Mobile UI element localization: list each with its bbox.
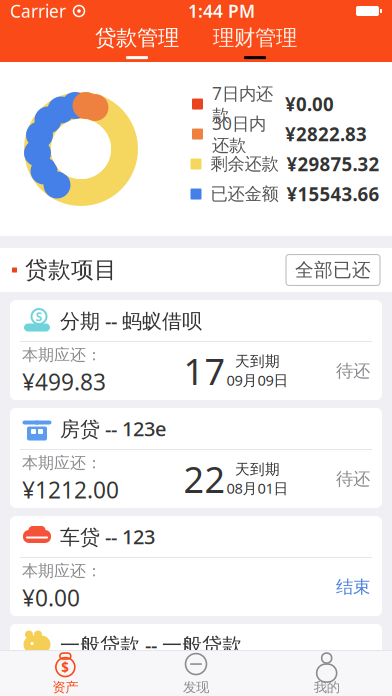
staticText: S (35, 308, 42, 324)
staticText: 17 (183, 347, 225, 395)
staticText: 车贷 -- 123 (60, 523, 155, 550)
staticText: ¥1212.00 (22, 475, 119, 505)
staticText: 08月01日 (226, 478, 288, 498)
staticText: $ (61, 658, 69, 676)
button[interactable]: $ (0, 651, 131, 696)
staticText: 一般贷款 -- 一般贷款 (60, 631, 242, 658)
staticText: 本期应还： (22, 561, 102, 581)
staticText: 贷款管理 (95, 25, 179, 51)
staticText: 理财管理 (213, 25, 297, 51)
staticText: 结束 (336, 576, 370, 598)
button[interactable]: 发现 (131, 651, 261, 696)
staticText: 30日内还款 (212, 112, 266, 156)
staticText: 1:44 PM (188, 0, 255, 22)
staticText: ¥0.00 (22, 583, 80, 613)
staticText: 剩余还款 (210, 153, 278, 175)
staticText: 全部已还 (295, 258, 371, 281)
staticText: 待还 (336, 468, 370, 490)
staticText: ¥15543.66 (286, 182, 379, 206)
staticText: 我的 (314, 679, 340, 695)
button[interactable]: 一般贷款 -- 一般贷款 (10, 624, 382, 696)
staticText: 22 (183, 455, 225, 503)
staticText: ¥2822.83 (285, 122, 367, 146)
staticText: 发现 (183, 679, 209, 695)
staticText: 资产 (52, 679, 78, 695)
staticText: 天到期 (235, 460, 280, 478)
staticText: Carrier (10, 0, 66, 22)
button[interactable]: 我的 (261, 651, 392, 696)
staticText: 待还 (336, 360, 370, 382)
staticText: 分期 -- 蚂蚁借呗 (60, 307, 202, 334)
staticText: ¥29875.32 (286, 152, 379, 176)
staticText: 本期应还： (22, 345, 102, 365)
staticText: 贷款项目 (25, 256, 117, 284)
staticText: ¥499.83 (22, 367, 106, 397)
button[interactable]: 房贷 -- 123e (10, 408, 382, 508)
staticText: 房贷 -- 123e (60, 415, 166, 442)
button[interactable]: S (10, 300, 382, 400)
staticText: 本期应还： (22, 669, 102, 689)
staticText: ¥0.00 (22, 691, 80, 696)
button[interactable]: 理财管理 (207, 25, 303, 59)
staticText: 已还金额 (210, 183, 278, 205)
staticText: 09月09日 (226, 370, 288, 390)
staticText: 本期应还： (22, 453, 102, 473)
button[interactable]: 全部已还 (286, 254, 380, 285)
button[interactable]: 贷款管理 (89, 25, 185, 59)
button[interactable]: 车贷 -- 123 (10, 516, 382, 616)
staticText: 天到期 (235, 352, 280, 370)
staticText: 结束 (336, 684, 370, 696)
staticText: 7日内还款 (212, 82, 273, 126)
staticText: ¥0.00 (285, 92, 334, 116)
